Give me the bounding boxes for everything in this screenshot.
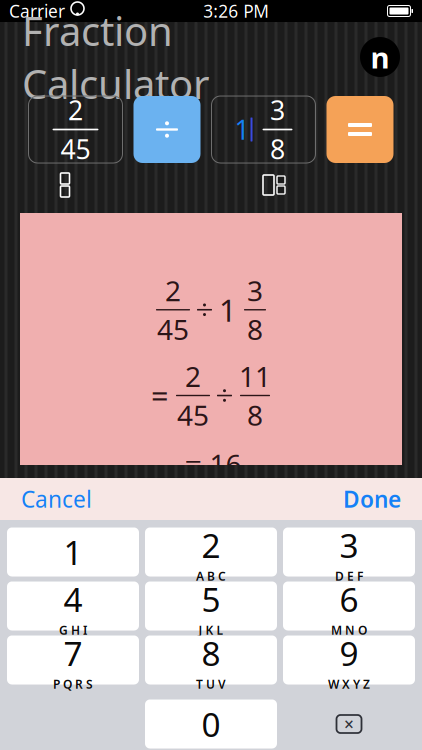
staticText: 8 bbox=[247, 396, 263, 433]
button[interactable]: 2 bbox=[145, 527, 277, 576]
button[interactable]: Cancel bbox=[13, 476, 100, 522]
button[interactable]: Delete bbox=[283, 699, 415, 748]
staticText: 45 bbox=[157, 310, 189, 348]
button[interactable]: 2 bbox=[28, 96, 122, 163]
staticText: 2 bbox=[185, 358, 201, 395]
staticText: W X Y Z bbox=[328, 676, 370, 692]
staticText: 3:26 PM bbox=[203, 0, 269, 22]
staticText: 3 bbox=[339, 523, 358, 567]
button[interactable]: 0 bbox=[145, 699, 277, 748]
staticText: 5 bbox=[201, 577, 220, 621]
button[interactable]: 4 bbox=[7, 581, 139, 630]
staticText: 2 bbox=[68, 92, 83, 128]
button[interactable]: Divide bbox=[133, 96, 200, 163]
button[interactable]: 1 bbox=[211, 96, 315, 163]
button[interactable]: Equals bbox=[326, 96, 393, 163]
staticText: P Q R S bbox=[53, 676, 93, 692]
staticText: 1 bbox=[219, 289, 237, 330]
staticText: Done bbox=[343, 484, 401, 514]
button[interactable]: 3 bbox=[283, 527, 415, 576]
button[interactable]: 6 bbox=[283, 581, 415, 630]
staticText: 4 bbox=[63, 577, 82, 621]
staticText: 8 bbox=[201, 631, 220, 675]
button[interactable]: 7 bbox=[7, 635, 139, 684]
button[interactable]: 8 bbox=[145, 635, 277, 684]
staticText: 9 bbox=[339, 631, 358, 675]
button[interactable]: 1 bbox=[7, 527, 139, 576]
button[interactable]: Done bbox=[335, 476, 409, 522]
staticText: 3 bbox=[247, 272, 263, 309]
staticText: 7 bbox=[63, 631, 82, 675]
staticText: T U V bbox=[196, 676, 226, 692]
staticText: 0 bbox=[201, 702, 220, 746]
staticText: Carrier bbox=[9, 0, 65, 22]
staticText: 8 bbox=[270, 131, 285, 167]
button[interactable]: Fraction mode bbox=[48, 169, 82, 201]
staticText: 45 bbox=[177, 396, 209, 433]
staticText: × bbox=[344, 712, 354, 735]
staticText: G H I bbox=[59, 622, 87, 638]
staticText: Cancel bbox=[21, 484, 92, 514]
staticText: Fraction Calculator bbox=[22, 4, 210, 110]
staticText: 6 bbox=[339, 577, 358, 621]
staticText: 1 bbox=[234, 112, 249, 147]
staticText: D E F bbox=[335, 568, 363, 584]
button[interactable]: 5 bbox=[145, 581, 277, 630]
staticText: M N O bbox=[331, 622, 367, 638]
staticText: n bbox=[370, 37, 389, 76]
staticText: 11 bbox=[239, 358, 271, 395]
button[interactable]: Mixed number mode bbox=[254, 169, 294, 201]
staticText: = bbox=[151, 375, 169, 416]
staticText: 3 bbox=[270, 92, 285, 128]
button[interactable]: App info bbox=[360, 37, 400, 77]
staticText: 1 bbox=[63, 530, 82, 574]
staticText: 2 bbox=[201, 523, 220, 567]
button[interactable]: 9 bbox=[283, 635, 415, 684]
staticText: J K L bbox=[198, 622, 223, 638]
staticText: 2 bbox=[165, 272, 181, 309]
staticText: A B C bbox=[196, 568, 226, 584]
staticText: 16 bbox=[209, 445, 241, 482]
staticText: 45 bbox=[60, 131, 90, 167]
staticText: 8 bbox=[247, 310, 263, 348]
staticText: = bbox=[184, 443, 202, 484]
